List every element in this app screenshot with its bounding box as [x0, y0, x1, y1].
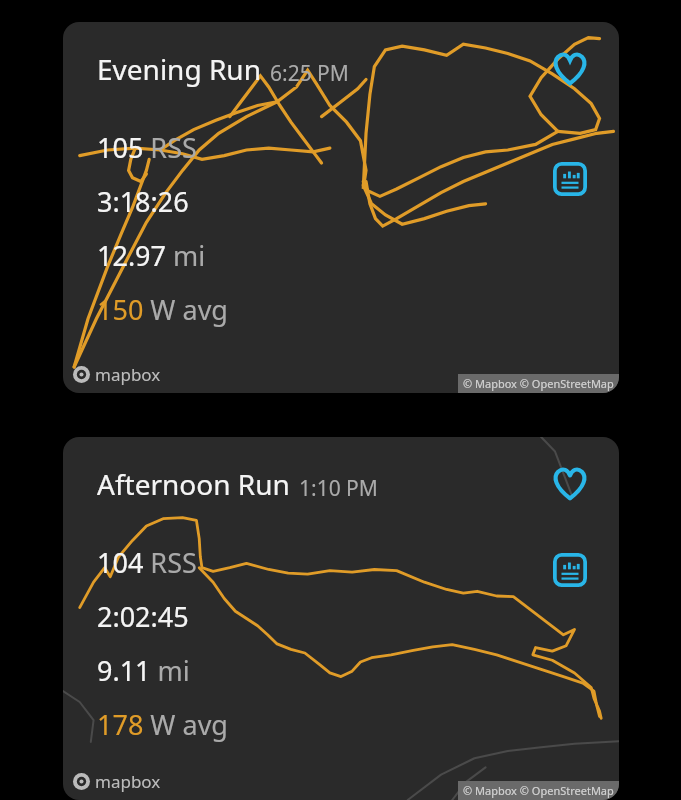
staticText: 1:10 PM — [299, 474, 378, 503]
button[interactable]: Afternoon Run — [63, 437, 619, 800]
staticText: 104 RSS — [97, 544, 197, 581]
staticText: © Mapbox © OpenStreetMap — [463, 783, 614, 798]
staticText: mapbox — [95, 770, 161, 793]
staticText: 6:25 PM — [270, 59, 349, 88]
staticText: 178 W avg — [97, 706, 228, 743]
staticText: Afternoon Run — [97, 465, 290, 503]
button[interactable]: Evening Run — [63, 22, 619, 393]
staticText: © Mapbox © OpenStreetMap — [463, 376, 614, 391]
staticText: 150 W avg — [97, 291, 228, 328]
button[interactable]: Favorite — [547, 46, 593, 92]
staticText: 12.97 mi — [97, 237, 206, 274]
staticText: 2:02:45 — [97, 598, 189, 635]
button[interactable]: Notes — [549, 549, 591, 591]
staticText: 105 RSS — [97, 129, 197, 166]
button[interactable]: Notes — [549, 158, 591, 200]
staticText: 3:18:26 — [97, 183, 189, 220]
staticText: 9.11 mi — [97, 652, 190, 689]
button[interactable]: Favorite — [547, 461, 593, 507]
staticText: Evening Run — [97, 50, 261, 88]
staticText: mapbox — [95, 363, 161, 386]
